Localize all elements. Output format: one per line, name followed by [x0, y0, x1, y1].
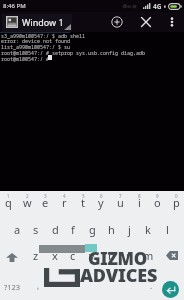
- button[interactable]: e: [36, 189, 54, 215]
- staticText: l: [166, 222, 169, 237]
- button[interactable]: s: [27, 216, 45, 242]
- staticText: m: [143, 248, 154, 263]
- staticText: 5: [82, 193, 85, 199]
- staticText: root@m100547:/ # setprop sys.usb.config …: [1, 50, 146, 57]
- button[interactable]: More options: [163, 12, 181, 32]
- staticText: j: [128, 222, 131, 237]
- staticText: n: [126, 248, 133, 263]
- button[interactable]: d: [46, 216, 64, 242]
- button[interactable]: t: [74, 189, 92, 215]
- staticText: x: [52, 248, 58, 263]
- button[interactable]: x: [46, 242, 64, 268]
- button[interactable]: k: [139, 216, 157, 242]
- staticText: error: device not found: [1, 38, 71, 45]
- button[interactable]: c: [64, 242, 82, 268]
- staticText: u: [117, 195, 124, 210]
- button[interactable]: q: [0, 189, 17, 215]
- staticText: GIZMO: [88, 247, 147, 270]
- button[interactable]: [2, 14, 72, 32]
- staticText: b: [108, 248, 115, 263]
- staticText: w: [23, 195, 32, 210]
- button[interactable]: Shift: [1, 244, 23, 270]
- staticText: h: [108, 222, 115, 237]
- staticText: 0: [175, 193, 178, 199]
- staticText: list_a990m100547:/ $ su: [1, 44, 71, 51]
- button[interactable]: l: [158, 216, 176, 242]
- button[interactable]: p: [167, 189, 184, 215]
- button[interactable]: Period: [143, 273, 159, 297]
- staticText: e: [42, 195, 49, 210]
- button[interactable]: n: [120, 242, 138, 268]
- staticText: 7: [119, 193, 122, 199]
- staticText: 4: [63, 193, 66, 199]
- staticText: ,: [37, 280, 40, 291]
- staticText: c: [70, 248, 76, 263]
- staticText: Window 1: [22, 16, 64, 28]
- staticText: s: [33, 222, 39, 237]
- button[interactable]: g: [83, 216, 101, 242]
- staticText: 8:46 PM: [3, 2, 26, 10]
- button[interactable]: Close window: [137, 12, 155, 32]
- staticText: ADVICES: [80, 263, 158, 288]
- staticText: 9: [156, 193, 159, 199]
- button[interactable]: w: [18, 189, 36, 215]
- staticText: g: [89, 222, 96, 237]
- staticText: 4G: [153, 2, 162, 11]
- button[interactable]: Backspace: [161, 242, 183, 268]
- staticText: s3_a990m100547:/ $ adb shell: [1, 33, 86, 40]
- staticText: 6: [100, 193, 103, 199]
- button[interactable]: j: [120, 216, 138, 242]
- staticText: r: [62, 195, 67, 210]
- staticText: v: [89, 248, 95, 263]
- staticText: 8: [138, 193, 141, 199]
- staticText: ?123: [4, 282, 21, 292]
- button[interactable]: f: [64, 216, 82, 242]
- button[interactable]: r: [55, 189, 73, 215]
- button[interactable]: m: [139, 242, 157, 268]
- button[interactable]: b: [102, 242, 120, 268]
- staticText: o: [154, 195, 161, 210]
- button[interactable]: New window: [108, 12, 126, 32]
- staticText: 1: [7, 193, 10, 199]
- staticText: t: [81, 195, 85, 210]
- staticText: .: [150, 280, 153, 291]
- button[interactable]: z: [27, 242, 45, 268]
- staticText: i: [138, 195, 141, 210]
- staticText: f: [71, 222, 75, 237]
- staticText: d: [52, 222, 59, 237]
- staticText: q: [5, 195, 12, 210]
- button[interactable]: o: [148, 189, 166, 215]
- button[interactable]: y: [92, 189, 110, 215]
- staticText: p: [173, 195, 180, 210]
- button[interactable]: u: [111, 189, 129, 215]
- button[interactable]: v: [83, 242, 101, 268]
- staticText: y: [98, 195, 104, 210]
- button[interactable]: i: [130, 189, 148, 215]
- staticText: k: [145, 222, 151, 237]
- staticText: 3: [44, 193, 47, 199]
- staticText: root@m100547:/ #: [1, 56, 53, 63]
- staticText: a: [14, 222, 21, 237]
- button[interactable]: Comma: [30, 273, 46, 297]
- staticText: 2: [26, 193, 29, 199]
- button[interactable]: Space: [40, 268, 140, 294]
- button[interactable]: a: [8, 216, 26, 242]
- staticText: z: [33, 248, 39, 263]
- button[interactable]: Enter: [158, 277, 183, 300]
- button[interactable]: h: [102, 216, 120, 242]
- button[interactable]: ?123: [0, 275, 24, 299]
